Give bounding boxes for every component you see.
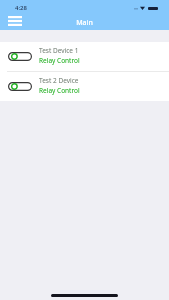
staticText: Test 2 Device: [39, 76, 79, 85]
button[interactable]: Toggle relay: [8, 82, 32, 91]
staticText: Relay Control: [39, 86, 80, 95]
staticText: 4:28: [15, 4, 27, 12]
staticText: Main: [0, 18, 169, 28]
staticText: Test Device 1: [39, 46, 79, 55]
button[interactable]: Menu: [2, 11, 28, 30]
button[interactable]: Toggle relay: [8, 52, 32, 61]
button[interactable]: Toggle relay: [0, 42, 169, 71]
button[interactable]: Toggle relay: [0, 72, 169, 101]
staticText: Relay Control: [39, 56, 80, 65]
